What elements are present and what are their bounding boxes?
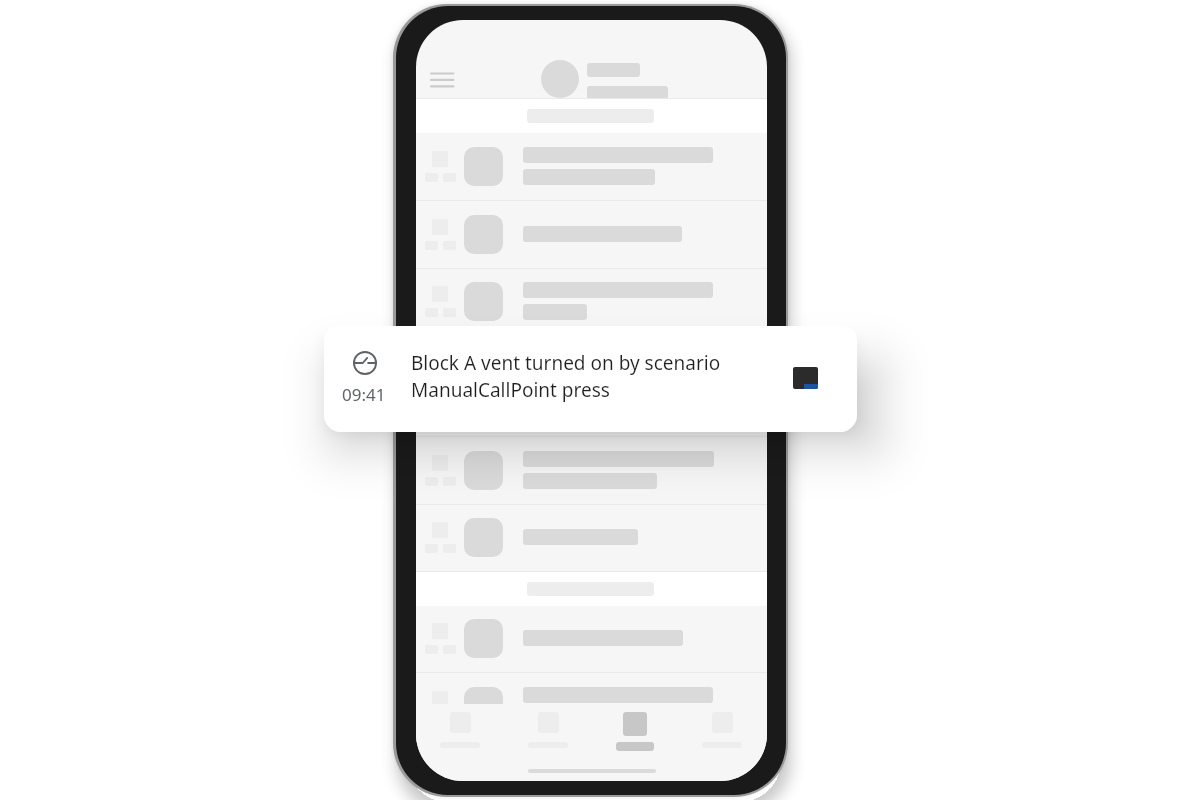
button[interactable] bbox=[416, 504, 767, 572]
staticText: Block A vent turned on by scenario Manua… bbox=[411, 350, 721, 403]
button[interactable] bbox=[416, 268, 767, 336]
button[interactable]: Tab 1 bbox=[434, 708, 486, 756]
button[interactable]: Tab 2 bbox=[522, 708, 574, 756]
button[interactable] bbox=[416, 201, 767, 269]
button[interactable]: Tab 4 bbox=[696, 708, 748, 756]
staticText: 09:41 bbox=[342, 383, 386, 406]
button[interactable]: 09:41 bbox=[324, 326, 857, 430]
button[interactable]: Menu bbox=[419, 61, 465, 99]
button[interactable] bbox=[416, 437, 767, 505]
button[interactable] bbox=[416, 133, 767, 201]
button[interactable] bbox=[416, 605, 767, 673]
button[interactable]: Tab 3 bbox=[609, 708, 661, 756]
button[interactable] bbox=[416, 673, 767, 741]
button[interactable] bbox=[416, 369, 767, 437]
